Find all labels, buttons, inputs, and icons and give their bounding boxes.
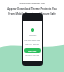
staticText: Protected bbox=[29, 34, 37, 36]
staticText: Appear Download Theme Protects You bbox=[7, 7, 57, 11]
staticText: Last scan 2 hours ago bbox=[25, 55, 40, 57]
button[interactable]: Scan Now bbox=[24, 48, 41, 53]
staticText: Application Browser App bbox=[19, 2, 45, 5]
staticText: Apps 124 bbox=[25, 43, 32, 45]
staticText: Files 320 bbox=[33, 43, 40, 45]
staticText: Scan your device now bbox=[24, 39, 41, 41]
staticText: From Mobile Threats and Secure Safe bbox=[8, 12, 56, 16]
staticText: Scan Now bbox=[28, 50, 37, 52]
